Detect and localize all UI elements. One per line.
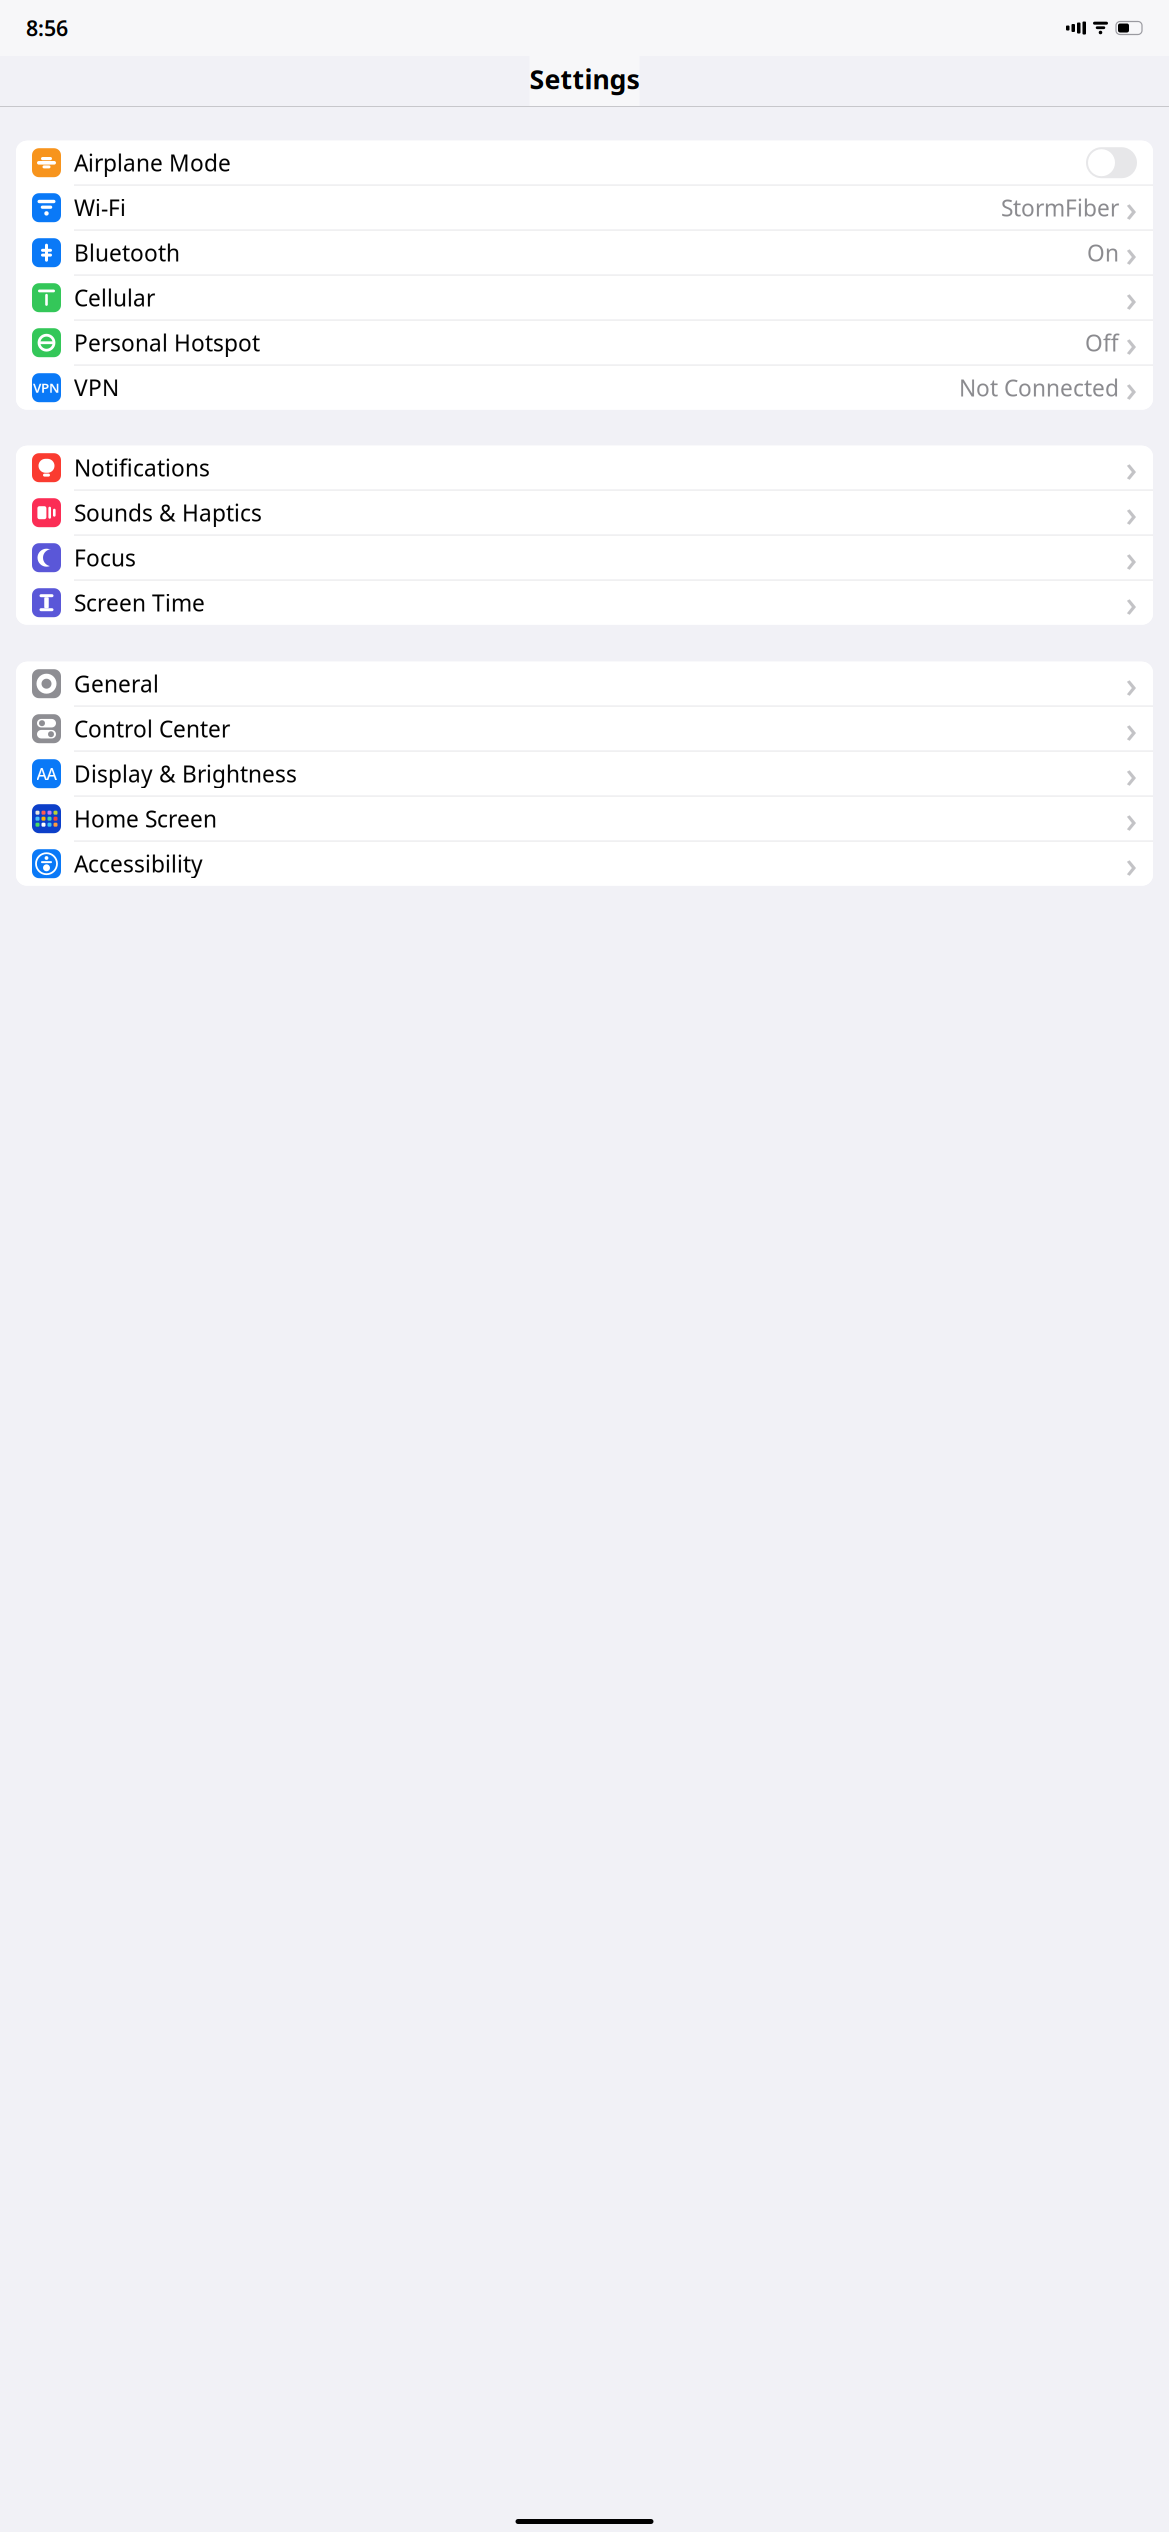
staticText: VPN bbox=[74, 373, 119, 403]
staticText: › bbox=[1125, 750, 1137, 798]
staticText: StormFiber bbox=[1001, 193, 1119, 223]
staticText: › bbox=[1125, 840, 1137, 888]
button[interactable]: Screen Time bbox=[16, 581, 1153, 625]
staticText: On bbox=[1087, 238, 1119, 268]
staticText: › bbox=[1125, 319, 1137, 367]
staticText: Airplane Mode bbox=[74, 148, 231, 178]
button[interactable]: General bbox=[16, 662, 1153, 706]
button[interactable]: VPN bbox=[16, 366, 1153, 410]
button[interactable]: Notifications bbox=[16, 446, 1153, 490]
staticText: Accessibility bbox=[74, 849, 203, 879]
staticText: Wi-Fi bbox=[74, 193, 126, 223]
staticText: AA bbox=[36, 763, 56, 784]
staticText: › bbox=[1125, 705, 1137, 753]
staticText: Control Center bbox=[74, 714, 230, 744]
staticText: Off bbox=[1085, 328, 1119, 358]
staticText: › bbox=[1125, 660, 1137, 708]
button[interactable]: Home Screen bbox=[16, 797, 1153, 841]
staticText: Notifications bbox=[74, 453, 210, 483]
button[interactable]: Bluetooth bbox=[16, 231, 1153, 275]
button[interactable]: Control Center bbox=[16, 707, 1153, 751]
button[interactable]: Airplane Mode bbox=[16, 141, 1153, 185]
staticText: › bbox=[1125, 364, 1137, 412]
staticText: › bbox=[1125, 444, 1137, 492]
staticText: Bluetooth bbox=[74, 238, 180, 268]
staticText: Home Screen bbox=[74, 804, 217, 834]
staticText: › bbox=[1125, 184, 1137, 232]
staticText: › bbox=[1125, 795, 1137, 843]
staticText: Settings bbox=[529, 61, 639, 97]
button[interactable]: Cellular bbox=[16, 276, 1153, 320]
staticText: Display & Brightness bbox=[74, 759, 297, 789]
button[interactable]: Personal Hotspot bbox=[16, 321, 1153, 365]
staticText: Sounds & Haptics bbox=[74, 498, 262, 528]
staticText: › bbox=[1125, 579, 1137, 627]
staticText: VPN bbox=[33, 379, 60, 396]
staticText: Personal Hotspot bbox=[74, 328, 260, 358]
button[interactable]: Sounds & Haptics bbox=[16, 491, 1153, 535]
staticText: › bbox=[1125, 534, 1137, 582]
button[interactable]: Accessibility bbox=[16, 842, 1153, 886]
staticText: › bbox=[1125, 229, 1137, 277]
button[interactable]: Wi-Fi bbox=[16, 186, 1153, 230]
staticText: Focus bbox=[74, 543, 136, 573]
staticText: › bbox=[1125, 274, 1137, 322]
staticText: General bbox=[74, 669, 159, 699]
button[interactable]: Focus bbox=[16, 536, 1153, 580]
staticText: Not Connected bbox=[959, 373, 1119, 403]
button[interactable]: AA bbox=[16, 752, 1153, 796]
staticText: Screen Time bbox=[74, 588, 205, 618]
staticText: 8:56 bbox=[26, 14, 68, 42]
staticText: Cellular bbox=[74, 283, 155, 313]
staticText: › bbox=[1125, 489, 1137, 537]
